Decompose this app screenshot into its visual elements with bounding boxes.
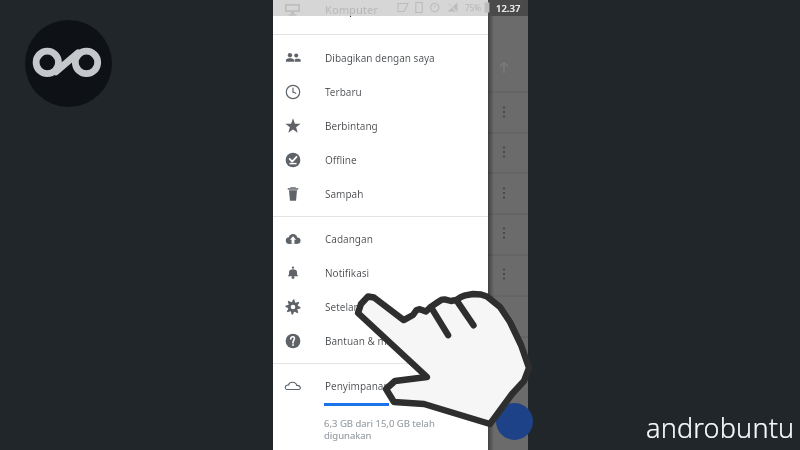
staticText: Terbaru — [325, 85, 362, 99]
button[interactable]: Offline — [273, 143, 488, 177]
staticText: Sampah — [325, 187, 364, 201]
button[interactable]: Bantuan & masukan — [273, 324, 488, 358]
button[interactable]: Setelan — [273, 290, 488, 324]
button[interactable]: Terbaru — [273, 75, 488, 109]
staticText: Notifikasi — [325, 266, 370, 280]
staticText: 12.37 — [496, 2, 521, 15]
button[interactable]: New — [496, 403, 533, 440]
staticText: 6,3 GB dari 15,0 GB telah digunakan — [324, 417, 468, 442]
staticText: Setelan — [325, 300, 360, 314]
button[interactable]: Dibagikan dengan saya — [273, 41, 488, 75]
button[interactable]: Penyimpanan — [273, 373, 488, 442]
staticText: Penyimpanan — [325, 379, 390, 393]
button[interactable]: Androbuntu logo — [25, 20, 112, 107]
staticText: Offline — [325, 153, 357, 167]
staticText: androbuntu — [646, 409, 795, 446]
button[interactable]: Cadangan — [273, 222, 488, 256]
staticText: Dibagikan dengan saya — [325, 51, 435, 65]
button[interactable]: Berbintang — [273, 109, 488, 143]
staticText: Bantuan & masukan — [325, 334, 421, 348]
button[interactable]: Notifikasi — [273, 256, 488, 290]
staticText: Komputer — [325, 2, 378, 17]
staticText: Cadangan — [325, 232, 373, 246]
staticText: Berbintang — [325, 119, 378, 133]
button[interactable]: Komputer — [273, 0, 488, 19]
staticText: 75% — [465, 2, 481, 13]
button[interactable]: Sampah — [273, 177, 488, 211]
